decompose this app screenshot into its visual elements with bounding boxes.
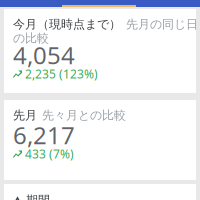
button[interactable]: 期間 xyxy=(4,184,196,200)
staticText: 先々月との比較 xyxy=(42,108,126,123)
staticText: 433 (7%) xyxy=(25,146,74,162)
staticText: 期間 xyxy=(26,193,50,200)
button[interactable]: 先月 xyxy=(4,100,196,180)
staticText: 今月（現時点まで） xyxy=(13,17,121,32)
button[interactable]: 今月（現時点まで） xyxy=(4,9,196,93)
staticText: 6,217 xyxy=(13,119,75,151)
staticText: 2,235 (123%) xyxy=(25,66,98,82)
staticText: 先月 xyxy=(13,108,37,123)
staticText: 4,054 xyxy=(13,39,75,71)
staticText: 先月の同じ日と xyxy=(126,17,200,32)
staticText: の比較 xyxy=(13,31,49,46)
